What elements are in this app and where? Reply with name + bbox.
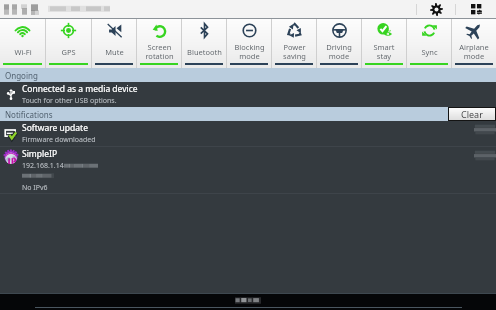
button[interactable]: Driving mode — [317, 19, 361, 68]
staticText: Wi-Fi — [14, 47, 32, 57]
staticText: Firmware downloaded — [22, 135, 96, 145]
staticText: Bluetooth — [187, 47, 222, 57]
staticText: Clear — [461, 108, 483, 120]
staticText: No IPv6 — [22, 183, 48, 193]
staticText: Connected as a media device — [22, 83, 138, 95]
staticText: GPS — [61, 47, 76, 57]
staticText: Power saving — [283, 42, 306, 62]
button[interactable]: Clear — [449, 108, 495, 120]
staticText: Ongoing — [5, 70, 38, 81]
staticText: Smart stay — [373, 42, 395, 62]
button[interactable]: Screen rotation — [137, 19, 181, 68]
staticText: Notifications — [5, 109, 53, 120]
staticText: Airplane mode — [459, 42, 489, 62]
button[interactable]: Mute — [92, 19, 136, 68]
button[interactable]: Airplane mode — [452, 19, 496, 68]
staticText: Mute — [105, 47, 124, 57]
button[interactable]: Settings — [417, 0, 455, 18]
button[interactable]: Edit quick settings — [456, 0, 496, 18]
staticText: Software update — [22, 122, 88, 134]
button[interactable]: Wi-Fi — [0, 19, 45, 68]
button[interactable]: Blocking mode — [227, 19, 271, 68]
staticText: Sync — [421, 47, 438, 57]
button[interactable]: Sync — [407, 19, 451, 68]
button[interactable]: Connected as a media device — [0, 82, 496, 107]
button[interactable]: Software update — [0, 121, 496, 146]
button[interactable]: SimpleIP — [0, 147, 496, 193]
button[interactable]: GPS — [46, 19, 91, 68]
staticText: SimpleIP — [22, 148, 58, 160]
staticText: Screen rotation — [145, 42, 174, 62]
button[interactable]: Bluetooth — [182, 19, 226, 68]
staticText: 192.168.1.14 — [22, 161, 64, 171]
staticText: Touch for other USB options. — [22, 96, 117, 106]
staticText: Driving mode — [326, 42, 352, 62]
staticText: Blocking mode — [234, 42, 265, 62]
button[interactable]: Power saving — [272, 19, 316, 68]
button[interactable]: Smart stay — [362, 19, 406, 68]
